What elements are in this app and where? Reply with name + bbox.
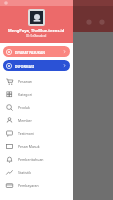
button[interactable]: Member <box>0 114 73 127</box>
button[interactable]: Pembayaran <box>0 179 73 192</box>
staticText: ID: 0x0taaabcd <box>26 34 47 38</box>
other: Pemberitahuan <box>6 156 13 163</box>
staticText: Pembayaran <box>18 183 39 188</box>
staticText: Kategori <box>18 92 32 97</box>
staticText: INFORMASI <box>15 64 35 68</box>
staticText: ISYARAT PASUKAN <box>15 50 45 54</box>
other: Pesan Masuk <box>6 143 13 150</box>
button[interactable]: INFORMASI <box>3 60 70 71</box>
other: Pesanan <box>6 78 13 85</box>
button[interactable]: Pesanan <box>0 75 73 88</box>
button[interactable]: Pesan Masuk <box>0 140 73 153</box>
staticText: MengPaya, TheBlue.teens.id <box>8 28 65 33</box>
other: Kategori <box>6 91 13 98</box>
staticText: Statistik <box>18 170 32 175</box>
button[interactable]: Kategori <box>0 88 73 101</box>
other: Pembayaran <box>6 182 13 189</box>
button[interactable]: Statistik <box>0 166 73 179</box>
staticText: Testimoni <box>18 131 34 136</box>
other: Produk <box>6 104 13 111</box>
staticText: Pesanan <box>18 79 33 84</box>
other: Statistik <box>6 169 13 176</box>
staticText: Member <box>18 118 32 123</box>
button[interactable]: ISYARAT PASUKAN <box>3 46 70 57</box>
staticText: Pesan Masuk <box>18 144 40 149</box>
other: Testimoni <box>6 130 13 137</box>
other: Member <box>6 117 13 124</box>
button[interactable]: Produk <box>0 101 73 114</box>
button[interactable]: Testimoni <box>0 127 73 140</box>
button[interactable]: Pemberitahuan <box>0 153 73 166</box>
staticText: Produk <box>18 105 30 110</box>
staticText: Pemberitahuan <box>18 157 44 162</box>
